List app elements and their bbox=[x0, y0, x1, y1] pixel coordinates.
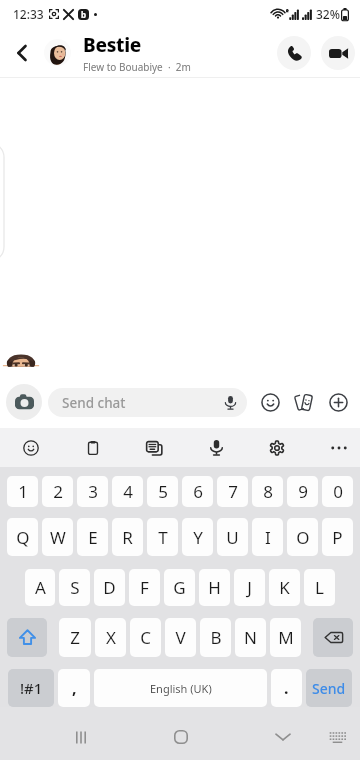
button[interactable]: Symbols bbox=[8, 669, 54, 707]
button[interactable]: Send bbox=[306, 669, 352, 707]
staticText: 5 bbox=[158, 480, 168, 503]
staticText: 32% bbox=[316, 6, 340, 22]
staticText: E bbox=[88, 526, 98, 549]
staticText: N bbox=[244, 626, 257, 649]
button[interactable]: B bbox=[200, 618, 231, 657]
button[interactable]: G bbox=[164, 569, 195, 606]
button[interactable]: 9 bbox=[287, 476, 318, 507]
button[interactable]: 4 bbox=[112, 476, 143, 507]
button[interactable]: A bbox=[25, 569, 55, 606]
button[interactable]: Hide keyboard bbox=[263, 717, 303, 757]
button[interactable]: D bbox=[94, 569, 125, 606]
button[interactable]: O bbox=[287, 518, 318, 556]
button[interactable]: Call bbox=[277, 36, 311, 70]
button[interactable]: 8 bbox=[252, 476, 283, 507]
staticText: S bbox=[70, 576, 80, 599]
button[interactable]: E bbox=[77, 518, 108, 556]
button[interactable]: L bbox=[304, 569, 335, 606]
button[interactable]: 7 bbox=[217, 476, 248, 507]
staticText: K bbox=[279, 576, 290, 599]
button[interactable]: Comma bbox=[58, 669, 90, 707]
button[interactable]: Back bbox=[9, 40, 35, 66]
staticText: Send bbox=[312, 679, 346, 698]
button[interactable]: X bbox=[95, 618, 126, 657]
staticText: Send chat bbox=[62, 394, 126, 412]
staticText: W bbox=[50, 526, 66, 549]
button[interactable]: R bbox=[112, 518, 143, 556]
staticText: A bbox=[35, 576, 46, 599]
button[interactable]: Space bbox=[94, 669, 267, 707]
staticText: Q bbox=[16, 526, 30, 549]
staticText: Z bbox=[70, 626, 80, 649]
button[interactable]: Emoji bbox=[259, 391, 281, 413]
button[interactable]: 3 bbox=[77, 476, 108, 507]
button[interactable]: 0 bbox=[322, 476, 353, 507]
button[interactable]: Settings bbox=[259, 428, 295, 467]
button[interactable]: 5 bbox=[147, 476, 178, 507]
button[interactable]: P bbox=[322, 518, 353, 556]
staticText: 6 bbox=[193, 480, 203, 503]
staticText: , bbox=[72, 677, 77, 699]
button[interactable]: Send chat bbox=[48, 388, 247, 417]
staticText: G bbox=[173, 576, 186, 599]
staticText: O bbox=[296, 526, 310, 549]
button[interactable]: V bbox=[165, 618, 196, 657]
button[interactable]: More options bbox=[327, 391, 349, 413]
button[interactable]: Video call bbox=[321, 36, 355, 70]
staticText: X bbox=[106, 626, 116, 649]
button[interactable]: 6 bbox=[182, 476, 213, 507]
staticText: 7 bbox=[228, 480, 238, 503]
staticText: 9 bbox=[298, 480, 308, 503]
staticText: Bestie bbox=[83, 32, 142, 58]
staticText: English (UK) bbox=[150, 681, 212, 696]
button[interactable]: Voice input bbox=[198, 428, 234, 467]
staticText: b bbox=[81, 9, 87, 20]
button[interactable]: Period bbox=[271, 669, 302, 707]
button[interactable]: Change keyboard bbox=[317, 717, 357, 757]
button[interactable]: Backspace bbox=[313, 618, 353, 657]
staticText: M bbox=[278, 626, 294, 649]
button[interactable]: Z bbox=[59, 618, 91, 657]
button[interactable]: Home bbox=[161, 717, 201, 757]
button[interactable]: 2 bbox=[42, 476, 73, 507]
button[interactable]: K bbox=[269, 569, 300, 606]
staticText: 12:33 bbox=[13, 6, 44, 22]
button[interactable]: T bbox=[147, 518, 178, 556]
staticText: C bbox=[140, 626, 151, 649]
button[interactable]: H bbox=[199, 569, 230, 606]
button[interactable]: J bbox=[234, 569, 265, 606]
staticText: 0 bbox=[333, 480, 343, 503]
staticText: V bbox=[175, 626, 186, 649]
staticText: . bbox=[284, 677, 289, 699]
button[interactable]: Y bbox=[182, 518, 213, 556]
staticText: B bbox=[210, 626, 222, 649]
button[interactable]: 1 bbox=[7, 476, 38, 507]
button[interactable]: S bbox=[59, 569, 90, 606]
button[interactable]: F bbox=[129, 569, 160, 606]
staticText: Y bbox=[193, 526, 203, 549]
button[interactable]: Camera bbox=[6, 384, 42, 420]
staticText: !#1 bbox=[20, 678, 43, 698]
button[interactable]: N bbox=[235, 618, 266, 657]
button[interactable]: C bbox=[130, 618, 161, 657]
staticText: 2 bbox=[53, 480, 63, 503]
button[interactable]: Shift bbox=[7, 618, 47, 657]
button[interactable]: W bbox=[42, 518, 73, 556]
staticText: 3 bbox=[88, 480, 98, 503]
staticText: P bbox=[332, 526, 343, 549]
button[interactable]: Clipboard bbox=[75, 428, 111, 467]
staticText: I bbox=[265, 526, 271, 549]
button[interactable]: Q bbox=[7, 518, 38, 556]
staticText: F bbox=[140, 576, 149, 599]
button[interactable]: Emoji bbox=[13, 428, 49, 467]
button[interactable]: More bbox=[321, 428, 357, 467]
button[interactable]: M bbox=[270, 618, 301, 657]
button[interactable]: Recent apps bbox=[61, 717, 101, 757]
staticText: T bbox=[158, 526, 168, 549]
button[interactable]: Stickers bbox=[293, 391, 315, 413]
button[interactable]: U bbox=[217, 518, 248, 556]
button[interactable]: Text editing bbox=[136, 428, 172, 467]
staticText: U bbox=[226, 526, 239, 549]
staticText: 1 bbox=[18, 480, 28, 503]
button[interactable]: I bbox=[252, 518, 283, 556]
